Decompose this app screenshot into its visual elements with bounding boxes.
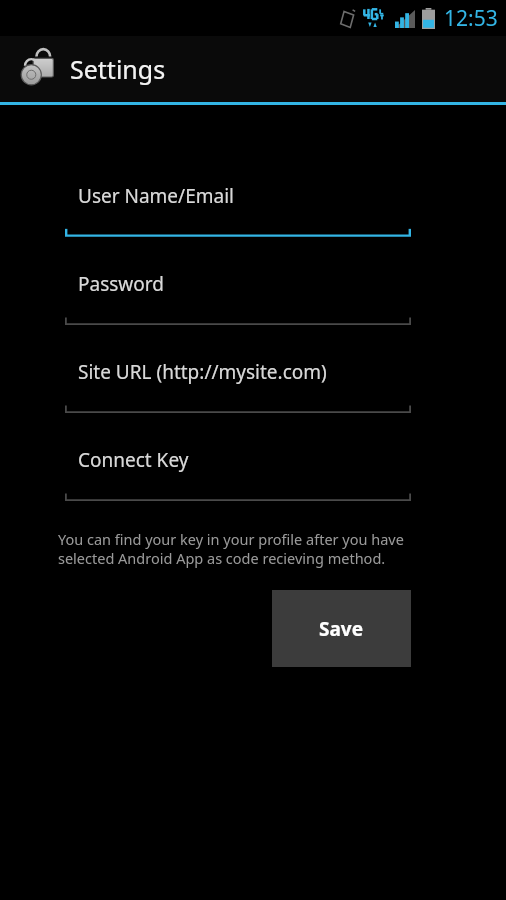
staticText: You can find your key in your profile af…: [58, 529, 404, 568]
button[interactable]: Save: [272, 590, 411, 667]
staticText: Site URL (http://mysite.com): [78, 359, 327, 385]
staticText: Save: [319, 616, 364, 642]
staticText: Password: [78, 271, 164, 297]
staticText: User Name/Email: [78, 183, 234, 209]
button[interactable]: Site URL (http://mysite.com): [65, 359, 411, 414]
staticText: 12:53: [444, 4, 498, 33]
button[interactable]: Connect Key: [65, 447, 411, 502]
button[interactable]: Password: [65, 271, 411, 326]
staticText: Settings: [70, 52, 166, 86]
staticText: Connect Key: [78, 447, 189, 473]
button[interactable]: User Name/Email: [65, 183, 411, 238]
